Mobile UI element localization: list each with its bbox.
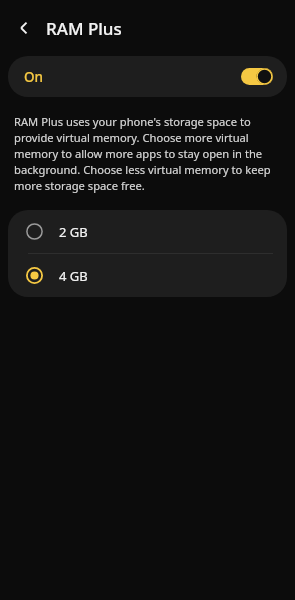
staticText: 2 GB [59,223,88,241]
button[interactable]: 2 GB [8,210,287,253]
button[interactable]: 4 GB [8,254,287,297]
button[interactable]: On [8,56,287,97]
button[interactable]: Back [6,10,42,46]
button[interactable]: RAM Plus on [241,68,273,85]
staticText: RAM Plus uses your phone's storage space… [14,114,281,193]
staticText: RAM Plus [46,17,122,40]
staticText: 4 GB [59,267,88,285]
staticText: On [24,68,44,86]
